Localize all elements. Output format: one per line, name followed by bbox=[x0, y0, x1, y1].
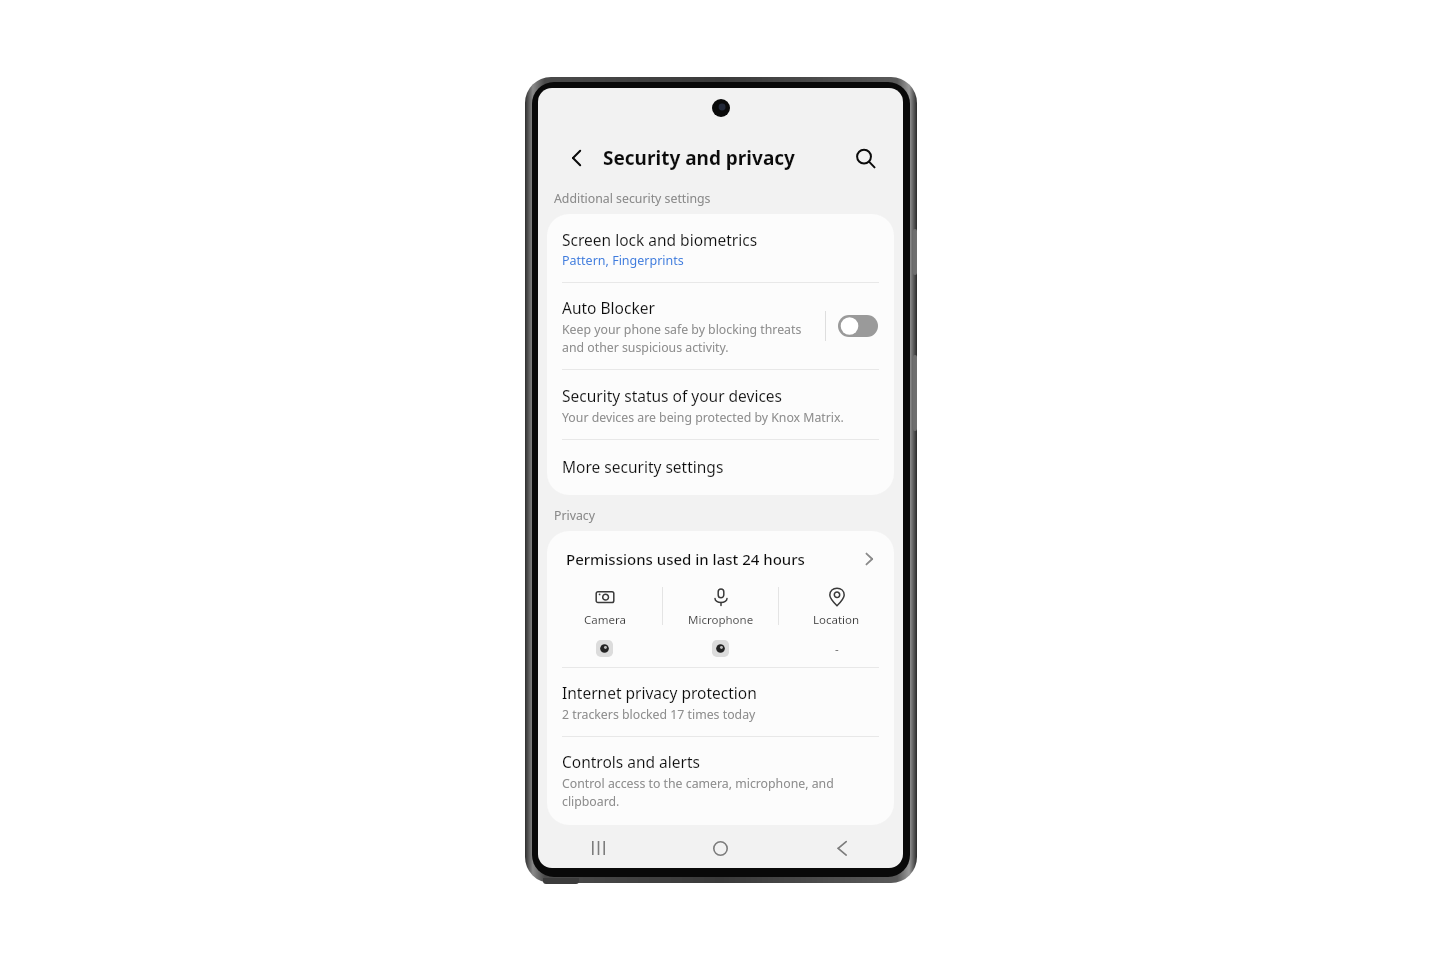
button[interactable]: Auto Blocker bbox=[547, 283, 894, 369]
button[interactable]: Microphone bbox=[663, 587, 778, 657]
staticText: 2 trackers blocked 17 times today bbox=[562, 706, 756, 723]
button[interactable]: Auto Blocker toggle bbox=[838, 315, 878, 337]
staticText: Auto Blocker bbox=[562, 297, 655, 318]
staticText: Pattern, Fingerprints bbox=[562, 252, 684, 269]
staticText: Keep your phone safe by blocking threats bbox=[562, 321, 802, 338]
staticText: Privacy bbox=[554, 507, 596, 524]
staticText: Microphone bbox=[688, 612, 754, 628]
staticText: clipboard. bbox=[562, 793, 620, 810]
staticText: Security status of your devices bbox=[562, 385, 783, 406]
button[interactable]: Search bbox=[847, 140, 883, 176]
staticText: and other suspicious activity. bbox=[562, 339, 729, 356]
staticText: Camera bbox=[584, 612, 626, 628]
button[interactable]: Back bbox=[560, 141, 594, 175]
button[interactable]: Recent apps bbox=[538, 828, 659, 868]
staticText: Controls and alerts bbox=[562, 751, 700, 772]
staticText: Additional security settings bbox=[554, 190, 711, 207]
staticText: Permissions used in last 24 hours bbox=[566, 549, 805, 569]
button[interactable]: Back bbox=[781, 828, 903, 868]
staticText: Location bbox=[813, 612, 860, 628]
button[interactable]: More security settings bbox=[547, 440, 894, 495]
button[interactable]: Security status of your devices bbox=[547, 370, 894, 439]
button[interactable]: Location bbox=[779, 587, 894, 657]
staticText: Control access to the camera, microphone… bbox=[562, 775, 834, 792]
staticText: Security and privacy bbox=[603, 145, 795, 171]
staticText: Your devices are being protected by Knox… bbox=[562, 409, 844, 426]
staticText: - bbox=[835, 641, 839, 657]
staticText: Screen lock and biometrics bbox=[562, 229, 758, 250]
button[interactable]: Home bbox=[659, 828, 781, 868]
staticText: Internet privacy protection bbox=[562, 682, 757, 703]
button[interactable]: Screen lock and biometrics bbox=[547, 214, 894, 282]
button[interactable]: Controls and alerts bbox=[547, 737, 894, 825]
staticText: More security settings bbox=[562, 456, 724, 477]
button[interactable]: Camera bbox=[547, 587, 662, 657]
button[interactable]: Internet privacy protection bbox=[547, 668, 894, 736]
button[interactable]: Permissions used in last 24 hours bbox=[547, 531, 894, 573]
